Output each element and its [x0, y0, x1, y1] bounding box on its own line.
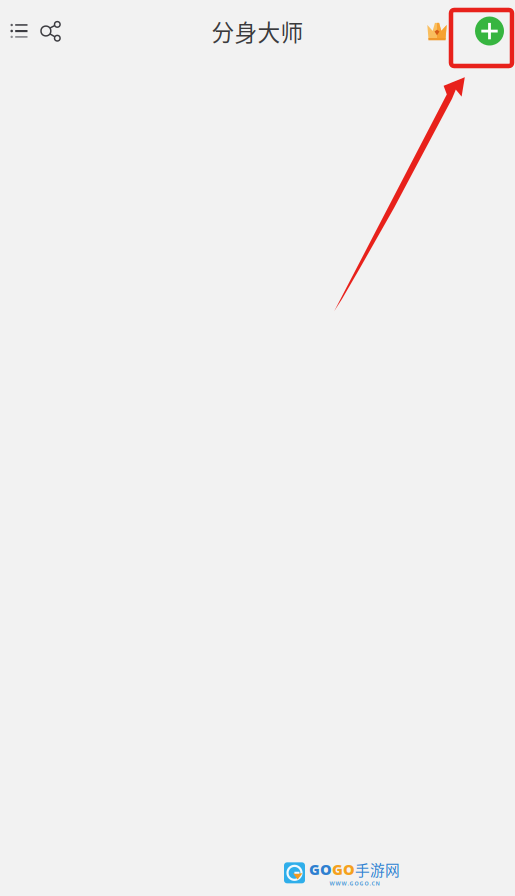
staticText: 手游网	[355, 859, 400, 880]
button[interactable]: Add clone	[475, 16, 504, 45]
button[interactable]: Share	[34, 9, 68, 53]
staticText: GO	[332, 860, 355, 879]
button[interactable]: List view	[4, 9, 34, 53]
staticText: W W W . G O G O . C N	[329, 880, 379, 887]
staticText: GO	[309, 860, 332, 879]
button[interactable]: VIP	[422, 9, 452, 53]
staticText: 分身大师	[211, 15, 303, 47]
